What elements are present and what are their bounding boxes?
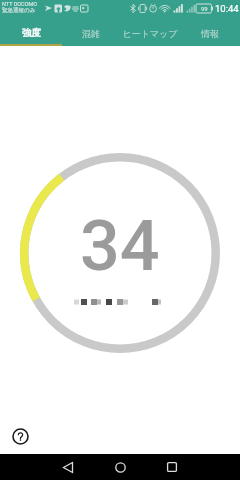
staticText: 10:44 — [215, 3, 239, 14]
button[interactable]: Home — [108, 454, 132, 480]
staticText: 99 — [201, 5, 208, 12]
button[interactable]: Back — [56, 454, 80, 480]
staticText: 混雑 — [82, 28, 100, 39]
staticText: 強度 — [22, 27, 41, 39]
staticText: ヒートマップ — [122, 28, 178, 39]
button[interactable]: 強度 — [0, 18, 62, 48]
button[interactable]: 情報 — [180, 18, 240, 48]
staticText: 34 — [80, 205, 160, 287]
staticText: 緊急通報のみ — [2, 7, 36, 14]
button[interactable]: Recents — [160, 454, 184, 480]
button[interactable]: ヒートマップ — [120, 18, 180, 48]
staticText: NTT DOCOMO — [2, 1, 38, 7]
button[interactable]: Help — [9, 425, 33, 449]
button[interactable]: 混雑 — [62, 18, 120, 48]
staticText: 情報 — [201, 28, 219, 39]
